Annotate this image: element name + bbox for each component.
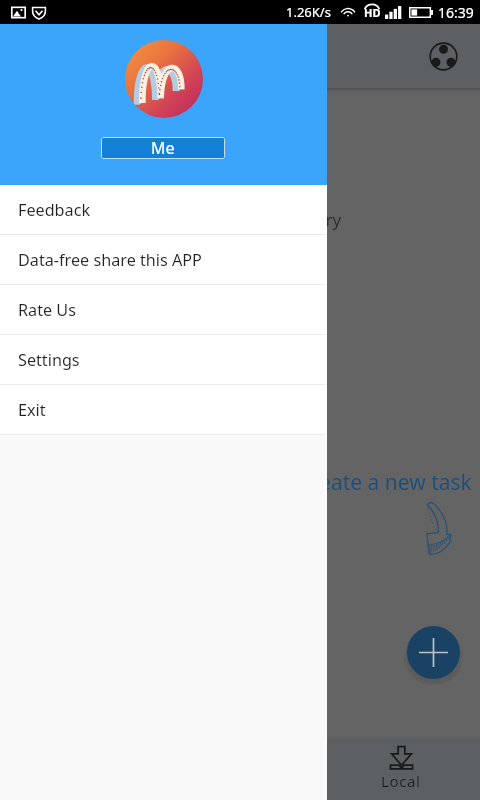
button[interactable]: Share xyxy=(425,38,461,74)
button[interactable]: Profile picture xyxy=(125,40,203,118)
button[interactable]: Data-free share this APP xyxy=(0,235,327,284)
staticText: Local xyxy=(381,771,421,791)
staticText: Rate Us xyxy=(18,299,76,321)
staticText: Tap "+" button to create a new task xyxy=(128,468,472,497)
staticText: Feedback xyxy=(18,199,91,221)
button[interactable]: Feedback xyxy=(0,185,327,234)
staticText: HD xyxy=(364,5,381,20)
staticText: 16:39 xyxy=(438,3,474,22)
button[interactable]: Rate Us xyxy=(0,285,327,334)
staticText: Settings xyxy=(18,349,80,371)
button[interactable]: Add new task xyxy=(407,626,460,679)
button[interactable]: Local xyxy=(322,738,480,800)
button[interactable]: Settings xyxy=(0,335,327,384)
staticText: 1.26K/s xyxy=(286,3,331,21)
button[interactable]: Me xyxy=(101,137,225,159)
staticText: History xyxy=(284,208,342,231)
staticText: Exit xyxy=(18,399,46,421)
staticText: Me xyxy=(151,137,175,159)
staticText: Data-free share this APP xyxy=(18,249,202,271)
button[interactable]: Exit xyxy=(0,385,327,434)
